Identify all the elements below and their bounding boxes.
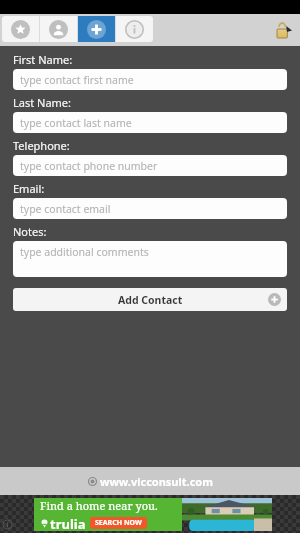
staticText: Last Name:	[13, 95, 72, 110]
button[interactable]: type additional comments	[13, 241, 287, 277]
button[interactable]: Add Contact	[13, 288, 287, 311]
staticText: Email:	[13, 181, 45, 196]
button[interactable]: type contact phone number	[13, 155, 287, 176]
button[interactable]: type contact first name	[13, 69, 287, 90]
staticText: Telephone:	[13, 138, 70, 153]
staticText: Add Contact	[118, 293, 183, 307]
button[interactable]: type contact email	[13, 198, 287, 219]
button[interactable]: Find a home near you.	[34, 498, 272, 531]
staticText: type contact email	[20, 202, 111, 216]
staticText: type contact first name	[20, 73, 134, 87]
staticText: First Name:	[13, 52, 73, 67]
staticText: Find a home near you.	[40, 498, 158, 513]
staticText: type additional comments	[20, 245, 149, 259]
button[interactable]: Lock	[272, 19, 294, 41]
staticText: trulia	[50, 515, 86, 531]
staticText: SEARCH NOW	[95, 518, 142, 528]
button[interactable]: Add contact	[78, 16, 115, 42]
staticText: type contact last name	[20, 116, 132, 130]
staticText: type contact phone number	[20, 159, 158, 173]
staticText: Notes:	[13, 224, 47, 239]
staticText: www.vicconsult.com	[100, 474, 213, 489]
button[interactable]: Favorites	[2, 16, 39, 42]
button[interactable]: Contacts	[40, 16, 77, 42]
button[interactable]: Info	[116, 16, 153, 42]
button[interactable]: type contact last name	[13, 112, 287, 133]
